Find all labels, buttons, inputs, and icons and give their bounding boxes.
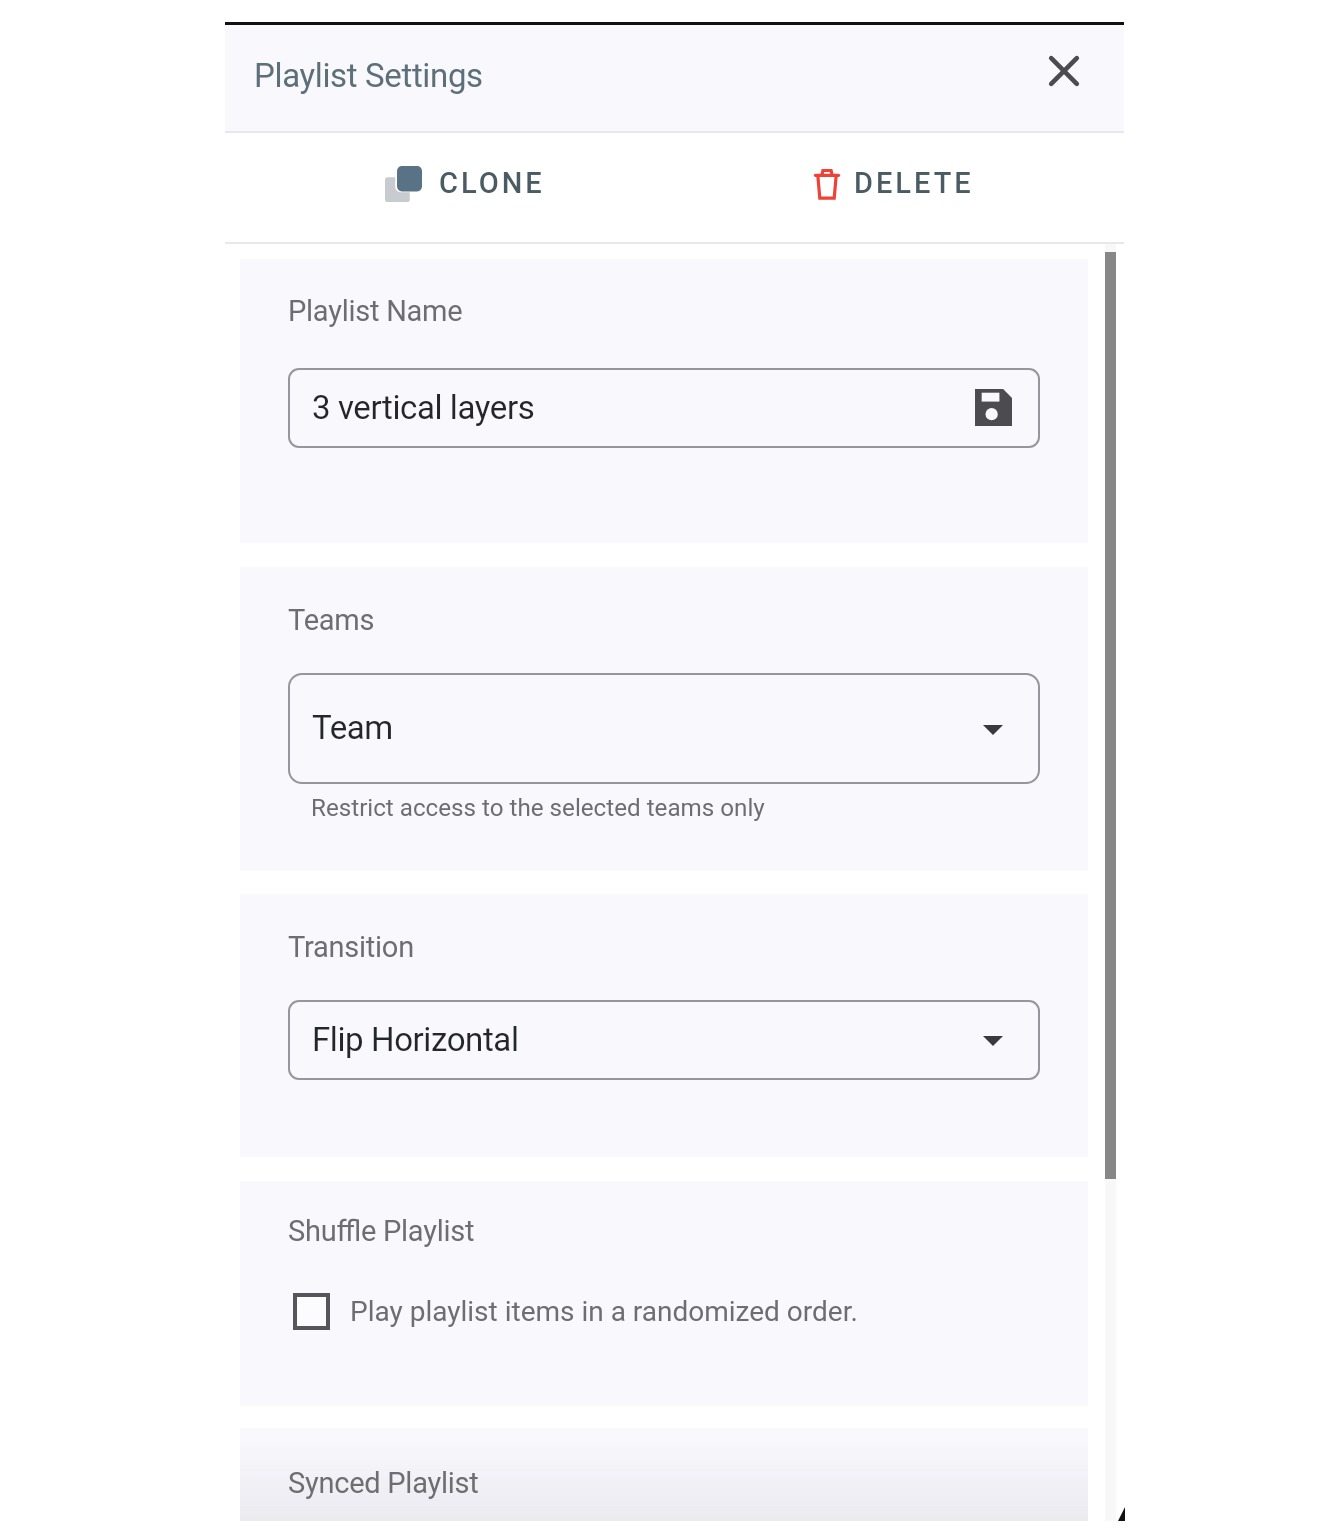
button[interactable]: 3 vertical layers: [288, 368, 1040, 448]
button[interactable]: Play playlist items in a randomized orde…: [293, 1293, 858, 1330]
staticText: Playlist Name: [288, 294, 463, 328]
staticText: CLONE: [439, 166, 545, 200]
staticText: DELETE: [854, 166, 974, 200]
button[interactable]: Team: [288, 673, 1040, 784]
button[interactable]: Save playlist name: [959, 373, 1027, 441]
button[interactable]: Close: [1033, 40, 1095, 102]
button[interactable]: CLONE: [357, 141, 557, 233]
staticText: 3 vertical layers: [312, 388, 535, 427]
staticText: Synced Playlist: [288, 1466, 479, 1500]
button[interactable]: Flip Horizontal: [288, 1000, 1040, 1080]
staticText: Team: [312, 708, 393, 747]
staticText: Teams: [288, 603, 375, 637]
staticText: Playlist Settings: [254, 56, 483, 95]
staticText: Flip Horizontal: [312, 1020, 519, 1059]
staticText: Restrict access to the selected teams on…: [311, 794, 765, 822]
staticText: Transition: [288, 930, 414, 964]
button[interactable]: DELETE: [788, 141, 998, 233]
staticText: Shuffle Playlist: [288, 1214, 475, 1248]
staticText: Play playlist items in a randomized orde…: [350, 1295, 858, 1328]
